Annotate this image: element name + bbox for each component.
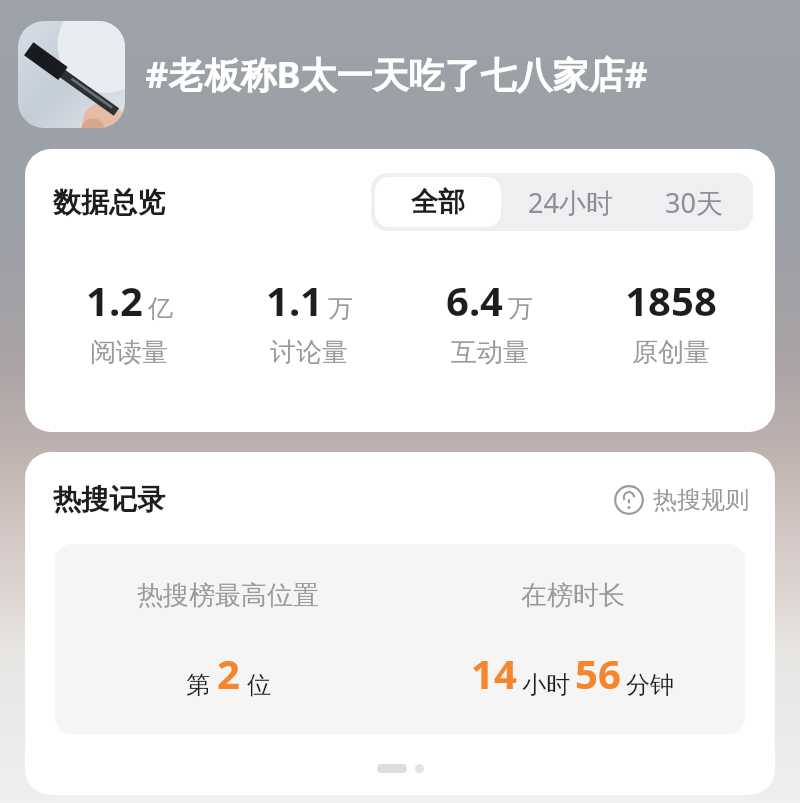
staticText: 热搜规则 xyxy=(653,485,749,515)
staticText: 小时 xyxy=(522,670,570,700)
staticText: 分钟 xyxy=(626,670,674,700)
staticText: 万 xyxy=(328,293,353,324)
staticText: 热搜榜最高位置 xyxy=(137,579,319,612)
staticText: 24小时 xyxy=(528,184,613,221)
staticText: 全部 xyxy=(411,185,465,219)
button[interactable]: 1.2 xyxy=(39,273,219,369)
button[interactable]: 6.4 xyxy=(399,273,580,369)
button[interactable]: 24小时 xyxy=(505,173,635,231)
button[interactable]: 30天 xyxy=(635,173,753,231)
staticText: 2 xyxy=(217,646,240,700)
staticText: 讨论量 xyxy=(270,336,348,369)
staticText: 数据总览 xyxy=(53,185,165,220)
button[interactable]: Topic image xyxy=(0,0,800,149)
staticText: 亿 xyxy=(148,293,173,324)
staticText: 在榜时长 xyxy=(521,579,625,612)
button[interactable]: Topic image xyxy=(18,21,125,128)
button[interactable]: 热搜规则 xyxy=(614,485,749,515)
staticText: 1.2 xyxy=(86,273,143,327)
other: 热搜规则 xyxy=(614,485,644,515)
staticText: 原创量 xyxy=(632,336,710,369)
staticText: 热搜记录 xyxy=(53,482,165,517)
staticText: 30天 xyxy=(665,184,723,221)
staticText: 阅读量 xyxy=(90,336,168,369)
staticText: 位 xyxy=(247,670,271,700)
button[interactable]: 全部 xyxy=(375,177,501,227)
staticText: 6.4 xyxy=(446,273,503,327)
staticText: 14 xyxy=(471,646,517,700)
staticText: 第 xyxy=(186,670,210,700)
staticText: 互动量 xyxy=(451,336,529,369)
staticText: 1858 xyxy=(625,273,717,327)
staticText: 1.1 xyxy=(266,273,323,327)
button[interactable]: 1.1 xyxy=(219,273,399,369)
button[interactable]: 1858 xyxy=(580,273,761,369)
staticText: 56 xyxy=(575,646,621,700)
staticText: 万 xyxy=(508,293,533,324)
button[interactable]: 热搜榜最高位置 xyxy=(55,544,745,734)
staticText: #老板称B太一天吃了七八家店# xyxy=(145,50,648,99)
